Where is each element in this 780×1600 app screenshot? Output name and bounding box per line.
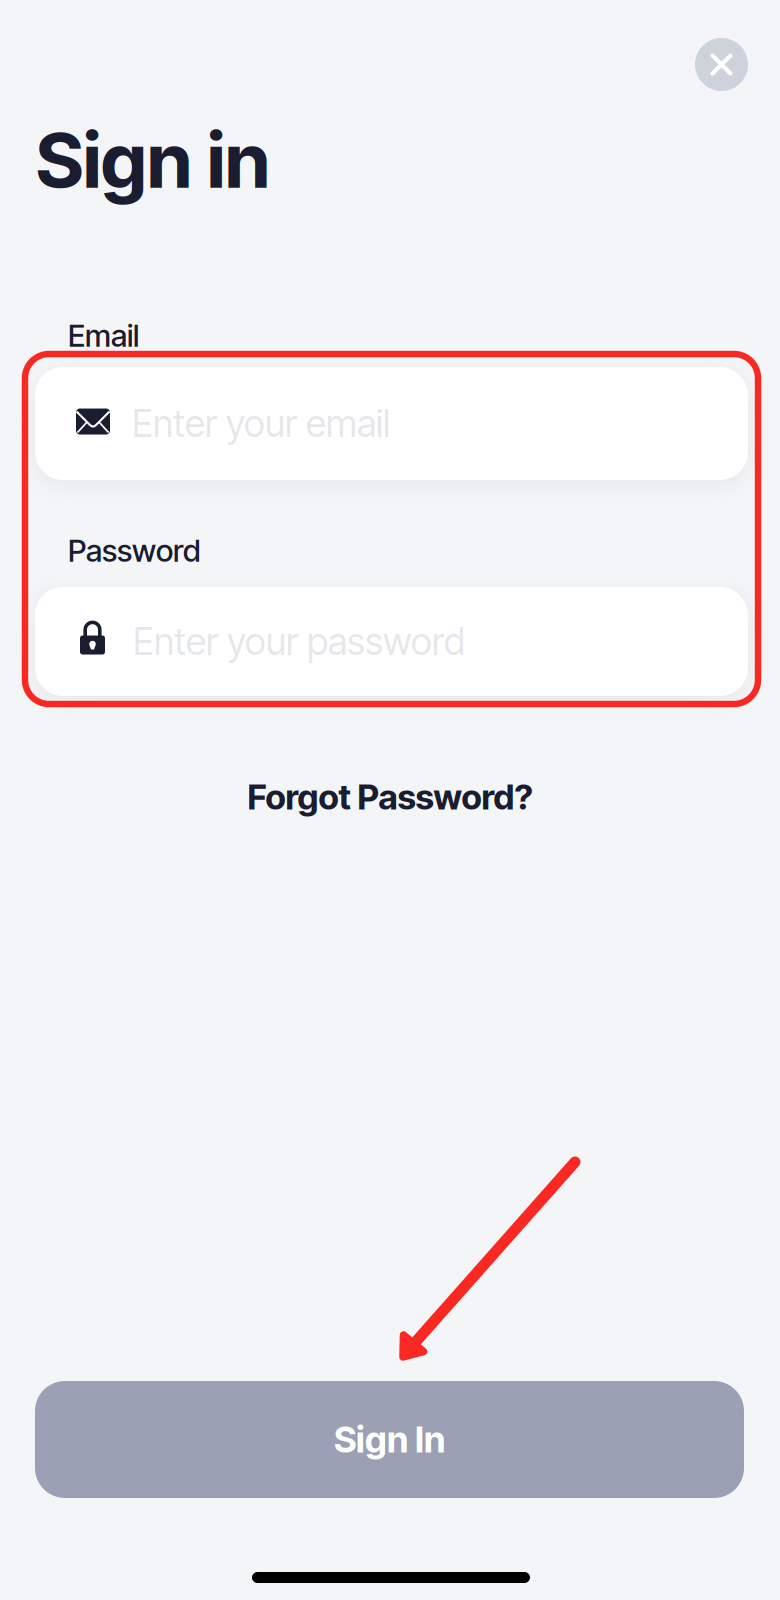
button[interactable]: Sign In [35,1381,744,1498]
staticText: Email [68,317,139,354]
staticText: Enter your password [133,619,465,664]
staticText: Password [68,532,201,569]
button[interactable]: Forgot Password? [220,772,560,822]
staticText: Sign in [36,114,270,206]
button[interactable]: Close [695,38,748,91]
staticText: Sign In [334,1418,445,1461]
staticText: Forgot Password? [247,776,532,818]
staticText: Enter your email [132,401,390,446]
